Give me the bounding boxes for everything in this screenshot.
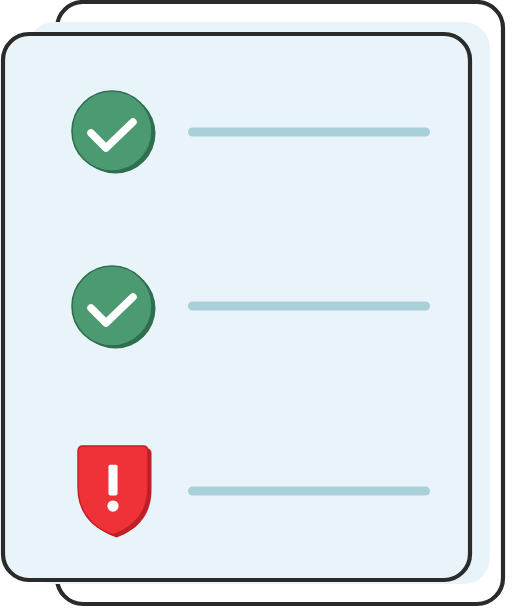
button[interactable]: Warning: action required <box>0 446 512 538</box>
button[interactable]: Requirement met <box>0 266 512 348</box>
button[interactable]: Requirement met <box>0 91 512 173</box>
